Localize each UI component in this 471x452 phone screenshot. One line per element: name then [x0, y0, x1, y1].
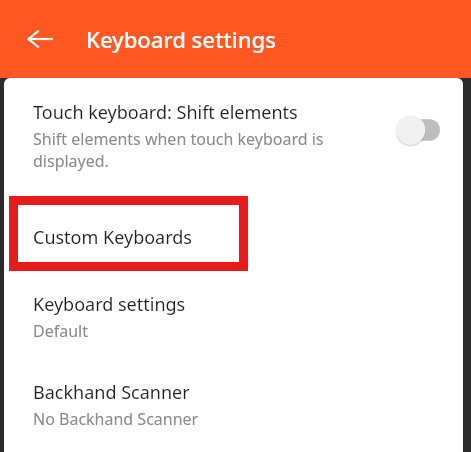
staticText: Custom Keyboards	[33, 225, 192, 250]
button[interactable]: Custom Keyboards	[4, 198, 463, 276]
staticText: Touch keyboard: Shift elements	[33, 100, 298, 125]
button[interactable]: Backhand Scanner	[4, 380, 463, 430]
button[interactable]: Keyboard settings	[4, 292, 463, 342]
staticText: Default	[33, 320, 88, 342]
button[interactable]: Shift elements toggle	[395, 114, 447, 146]
staticText: Shift elements when touch keyboard is di…	[33, 128, 385, 172]
button[interactable]: Back	[18, 17, 62, 61]
button[interactable]: Touch keyboard: Shift elements	[4, 100, 463, 172]
staticText: Keyboard settings	[86, 24, 276, 54]
staticText: No Backhand Scanner	[33, 408, 199, 430]
staticText: Keyboard settings	[33, 292, 186, 317]
staticText: Backhand Scanner	[33, 380, 190, 405]
